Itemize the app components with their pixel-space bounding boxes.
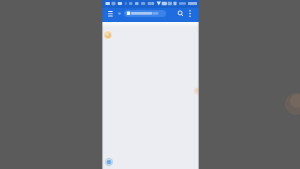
button[interactable]: Search [175, 8, 185, 19]
button[interactable]: Profile picture [103, 30, 113, 40]
button[interactable]: Open navigation menu [105, 8, 115, 19]
button[interactable]: Home [115, 8, 124, 19]
button[interactable]: More options [185, 8, 194, 19]
button[interactable]: Record [103, 156, 115, 168]
button[interactable]: Address bar, mysite.com [124, 10, 166, 17]
